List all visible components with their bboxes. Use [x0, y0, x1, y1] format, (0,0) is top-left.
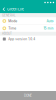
staticText: Time: [8, 26, 16, 30]
staticText: DONE: [24, 94, 32, 97]
staticText: 15 min: [43, 26, 53, 30]
button[interactable]: Time: [0, 25, 56, 32]
button[interactable]: App version 1.0.4: [0, 36, 56, 42]
staticText: App version 1.0.4: [8, 37, 35, 41]
staticText: Mode: [8, 19, 17, 23]
staticText: GENERAL: [2, 14, 16, 17]
staticText: Auto: [46, 19, 53, 23]
staticText: ABOUT: [2, 32, 12, 35]
button[interactable]: Back: [2, 6, 6, 12]
button[interactable]: DONE: [0, 91, 56, 100]
button[interactable]: Mode: [0, 17, 56, 24]
staticText: Green Life: [7, 7, 24, 11]
